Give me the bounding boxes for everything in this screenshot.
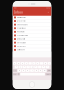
staticText: M	[44, 70, 45, 71]
staticText: Z	[19, 70, 20, 71]
staticText: Grocery list	[17, 20, 25, 22]
button[interactable]: Reading list	[13, 30, 51, 34]
staticText: X	[23, 70, 24, 71]
button[interactable]: Workout plan	[13, 41, 51, 45]
staticText: B	[36, 70, 37, 71]
button[interactable]: Grocery list	[13, 19, 51, 23]
button[interactable]: H	[34, 66, 38, 68]
staticText: Call the bank	[17, 49, 25, 51]
staticText: Y	[33, 62, 34, 64]
button[interactable]: U	[36, 62, 39, 65]
staticText: E	[22, 62, 23, 64]
staticText: +	[47, 11, 49, 14]
staticText: H	[35, 66, 36, 68]
button[interactable]: D	[22, 66, 26, 68]
staticText: return	[46, 73, 51, 75]
staticText: D	[24, 66, 25, 68]
button[interactable]: C	[26, 69, 30, 72]
staticText: 9:41	[14, 7, 17, 9]
button[interactable]: O	[44, 62, 47, 65]
staticText: U	[37, 62, 38, 64]
button[interactable]: Y	[32, 62, 35, 65]
button[interactable]: E	[21, 62, 24, 65]
button[interactable]: K	[42, 66, 45, 68]
staticText: O	[45, 62, 46, 64]
button[interactable]: G	[30, 66, 34, 68]
staticText: Travel packing	[17, 34, 28, 36]
staticText: W	[18, 62, 19, 64]
staticText: Birthday gifts	[17, 38, 25, 40]
button[interactable]: 123	[13, 73, 17, 75]
button[interactable]: N	[39, 69, 42, 72]
staticText: 123	[13, 73, 16, 75]
staticText: N	[40, 70, 41, 71]
button[interactable]: I	[40, 62, 43, 65]
button[interactable]: Birthday gifts	[13, 37, 51, 41]
staticText: C	[27, 70, 28, 71]
staticText: Reading list	[17, 31, 24, 33]
button[interactable]: Z	[17, 69, 21, 72]
button[interactable]: V	[30, 69, 34, 72]
button[interactable]: F	[26, 66, 30, 68]
staticText: P	[49, 62, 50, 64]
button[interactable]: P	[48, 62, 51, 65]
staticText: Workout plan	[17, 42, 26, 43]
staticText: Weekend plans	[17, 24, 28, 25]
staticText: Recipes to try	[17, 45, 26, 47]
button[interactable]: S	[19, 66, 22, 68]
staticText: ⇧	[14, 70, 15, 71]
button[interactable]: A	[15, 66, 18, 68]
button[interactable]: ⌫	[47, 69, 51, 72]
staticText: Inbox	[14, 11, 22, 14]
button[interactable]: Q	[13, 62, 16, 65]
button[interactable]: return	[45, 73, 51, 75]
button[interactable]: Meeting notes	[13, 16, 51, 19]
staticText: Meeting notes	[17, 16, 26, 18]
button[interactable]: Travel packing	[13, 34, 51, 37]
staticText: A	[16, 66, 17, 68]
button[interactable]: ☺	[17, 73, 20, 75]
button[interactable]: T	[28, 62, 32, 65]
button[interactable]: ⇧	[13, 69, 17, 72]
button[interactable]: Call the bank	[13, 48, 51, 52]
button[interactable]: X	[22, 69, 25, 72]
staticText: R	[26, 62, 27, 64]
button[interactable]: B	[34, 69, 38, 72]
button[interactable]: New	[47, 11, 50, 14]
button[interactable]: Project ideas	[13, 26, 51, 30]
staticText: L	[47, 66, 48, 68]
button[interactable]: Recipes to try	[13, 44, 51, 48]
staticText: Project ideas	[17, 27, 26, 29]
button[interactable]: R	[25, 62, 28, 65]
button[interactable]: W	[17, 62, 20, 65]
staticText: K	[43, 66, 44, 68]
staticText: Q	[14, 62, 15, 64]
button[interactable]: Weekend plans	[13, 23, 51, 26]
staticText: 100%	[46, 7, 50, 9]
button[interactable]: M	[43, 69, 46, 72]
button[interactable]: J	[38, 66, 41, 68]
